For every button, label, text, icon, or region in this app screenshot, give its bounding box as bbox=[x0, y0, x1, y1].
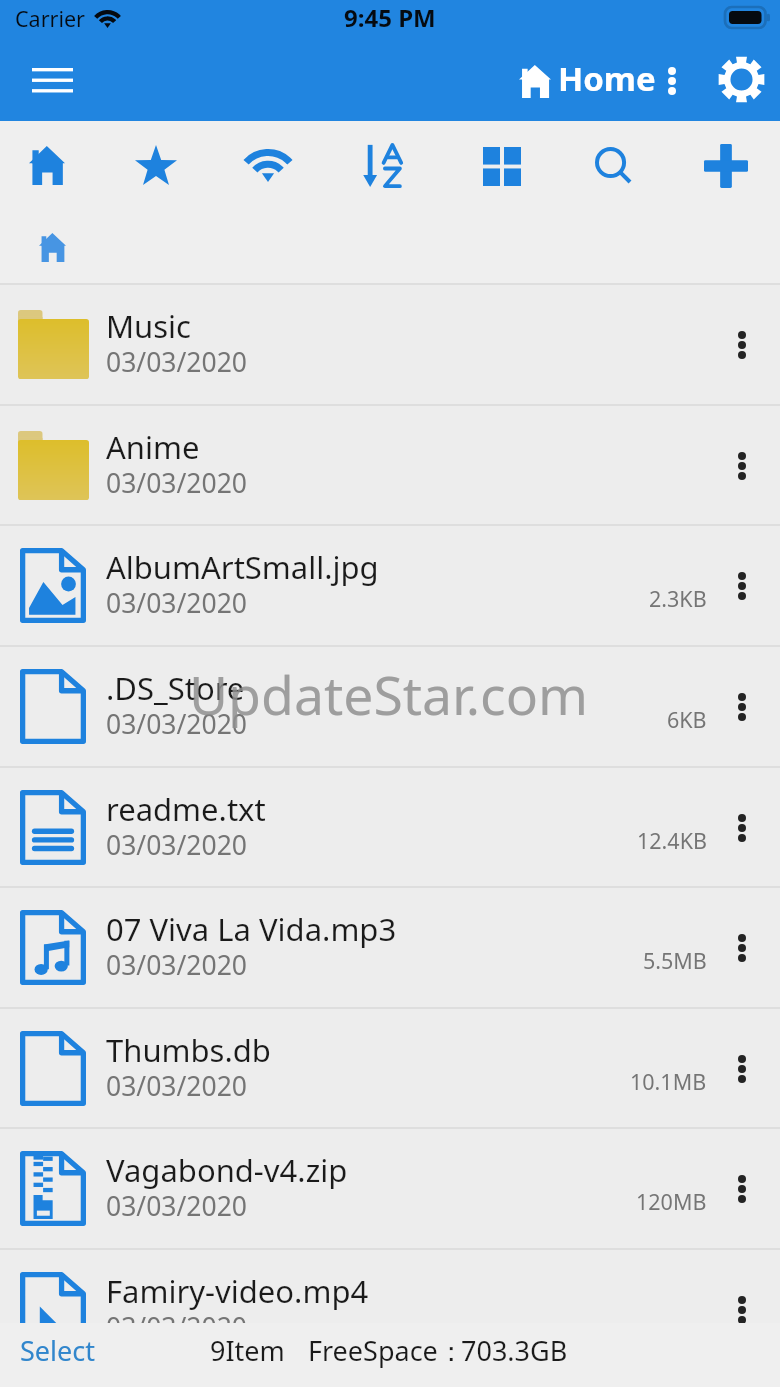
staticText: Anime bbox=[106, 426, 200, 468]
button[interactable]: .DS_Store bbox=[0, 647, 780, 766]
button[interactable]: Music bbox=[0, 285, 780, 404]
staticText: 120MB bbox=[636, 1187, 707, 1216]
button[interactable]: More options bbox=[707, 888, 780, 1007]
button[interactable]: Select bbox=[8, 1322, 107, 1379]
button[interactable]: Root folder bbox=[26, 221, 78, 273]
staticText: AlbumArtSmall.jpg bbox=[106, 546, 379, 588]
staticText: Thumbs.db bbox=[106, 1029, 271, 1071]
button[interactable]: Home bbox=[505, 46, 695, 120]
staticText: 12.4KB bbox=[637, 826, 707, 855]
button[interactable]: More options bbox=[707, 406, 780, 525]
button[interactable]: More options bbox=[707, 1009, 780, 1128]
button[interactable]: Home bbox=[0, 121, 99, 210]
staticText: 03/03/2020 bbox=[106, 1068, 247, 1104]
staticText: Music bbox=[106, 305, 192, 347]
button[interactable]: Grid view bbox=[450, 121, 554, 210]
button[interactable]: Add bbox=[674, 121, 778, 210]
button[interactable]: More options bbox=[707, 647, 780, 766]
button[interactable]: Favorites bbox=[104, 121, 208, 210]
staticText: Famiry-video.mp4 bbox=[106, 1270, 369, 1312]
staticText: 07 Viva La Vida.mp3 bbox=[106, 908, 397, 950]
button[interactable]: More options bbox=[707, 1250, 780, 1369]
staticText: .DS_Store bbox=[106, 667, 245, 709]
button[interactable]: More options bbox=[707, 1129, 780, 1248]
button[interactable]: More options bbox=[707, 526, 780, 645]
button[interactable]: Thumbs.db bbox=[0, 1009, 780, 1128]
staticText: Vagabond-v4.zip bbox=[106, 1149, 348, 1191]
staticText: 03/03/2020 bbox=[106, 585, 247, 621]
staticText: 5.5MB bbox=[643, 946, 707, 975]
button[interactable]: Menu bbox=[12, 45, 93, 121]
staticText: 03/03/2020 bbox=[106, 706, 247, 742]
staticText: 9:45 PM bbox=[344, 1, 436, 34]
staticText: Select bbox=[20, 1332, 95, 1369]
staticText: 6KB bbox=[667, 705, 707, 734]
button[interactable]: AlbumArtSmall.jpg bbox=[0, 526, 780, 645]
button[interactable]: More options bbox=[707, 285, 780, 404]
button[interactable]: Famiry-video.mp4 bbox=[0, 1250, 780, 1369]
staticText: 03/03/2020 bbox=[106, 827, 247, 863]
staticText: 703.3GB bbox=[461, 1332, 568, 1369]
staticText: UpdateStar.com bbox=[189, 658, 589, 731]
staticText: 9Item bbox=[210, 1332, 285, 1369]
staticText: 03/03/2020 bbox=[106, 1309, 247, 1345]
button[interactable]: Vagabond-v4.zip bbox=[0, 1129, 780, 1248]
staticText: 03/03/2020 bbox=[106, 465, 247, 501]
button[interactable]: 07 Viva La Vida.mp3 bbox=[0, 888, 780, 1007]
button[interactable]: Search bbox=[561, 121, 665, 210]
staticText: FreeSpace： bbox=[308, 1332, 465, 1369]
button[interactable]: Sort A to Z bbox=[332, 121, 436, 210]
staticText: readme.txt bbox=[106, 788, 266, 830]
staticText: Home bbox=[558, 56, 656, 101]
button[interactable]: Network bbox=[216, 121, 320, 210]
staticText: Carrier bbox=[15, 4, 85, 33]
staticText: 2.3KB bbox=[649, 584, 707, 613]
staticText: 03/03/2020 bbox=[106, 1188, 247, 1224]
staticText: 03/03/2020 bbox=[106, 344, 247, 380]
staticText: 03/03/2020 bbox=[106, 947, 247, 983]
button[interactable]: More options bbox=[707, 768, 780, 887]
button[interactable]: Anime bbox=[0, 406, 780, 525]
button[interactable]: Settings bbox=[704, 45, 780, 121]
button[interactable]: readme.txt bbox=[0, 768, 780, 887]
staticText: 10.1MB bbox=[630, 1067, 707, 1096]
